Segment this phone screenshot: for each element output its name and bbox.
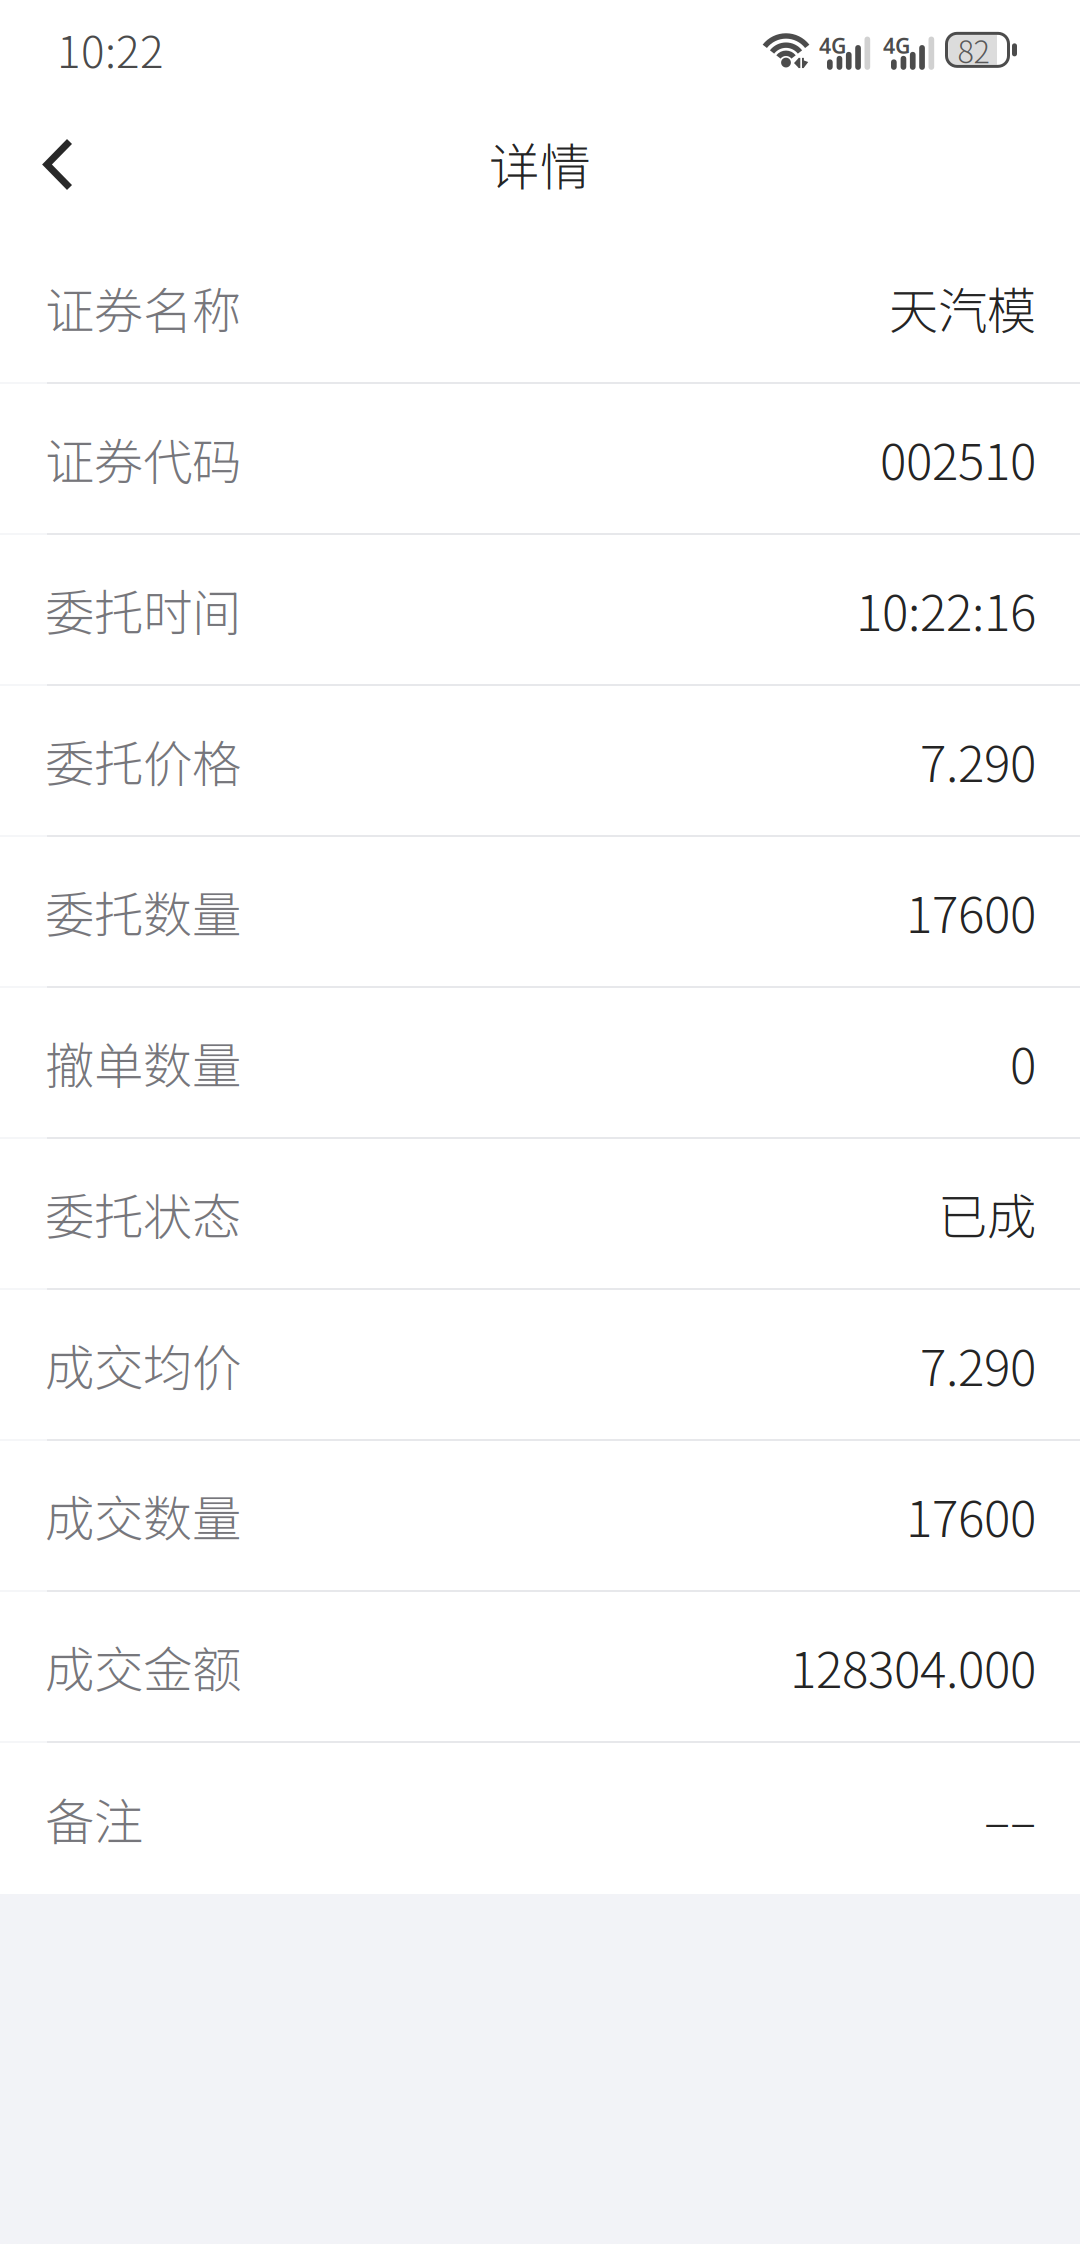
staticText: 17600 xyxy=(906,1480,1036,1551)
staticText: 128304.000 xyxy=(790,1631,1036,1702)
staticText: 10:22:16 xyxy=(856,574,1036,645)
staticText: 成交均价 xyxy=(45,1329,241,1400)
staticText: 委托价格 xyxy=(45,725,241,796)
button[interactable]: Back xyxy=(0,104,110,233)
staticText: 17600 xyxy=(906,876,1036,947)
staticText: 委托状态 xyxy=(45,1178,241,1249)
staticText: 天汽模 xyxy=(889,272,1036,343)
staticText: 委托数量 xyxy=(45,876,241,947)
staticText: 证券名称 xyxy=(45,272,241,343)
staticText: 证券代码 xyxy=(45,423,241,494)
staticText: 详情 xyxy=(489,127,591,200)
staticText: 7.290 xyxy=(920,725,1036,796)
staticText: 82 xyxy=(957,28,989,72)
staticText: –– xyxy=(984,1783,1036,1854)
staticText: 已成 xyxy=(938,1178,1036,1249)
staticText: 10:22 xyxy=(57,17,164,81)
staticText: 4G xyxy=(819,31,846,60)
staticText: 撤单数量 xyxy=(45,1027,241,1098)
staticText: 委托时间 xyxy=(45,574,241,645)
staticText: 备注 xyxy=(45,1783,143,1854)
staticText: 002510 xyxy=(880,423,1036,494)
staticText: 7.290 xyxy=(920,1329,1036,1400)
staticText: 成交数量 xyxy=(45,1480,241,1551)
staticText: 0 xyxy=(1010,1027,1036,1098)
staticText: 4G xyxy=(883,31,910,60)
staticText: 成交金额 xyxy=(45,1631,241,1702)
